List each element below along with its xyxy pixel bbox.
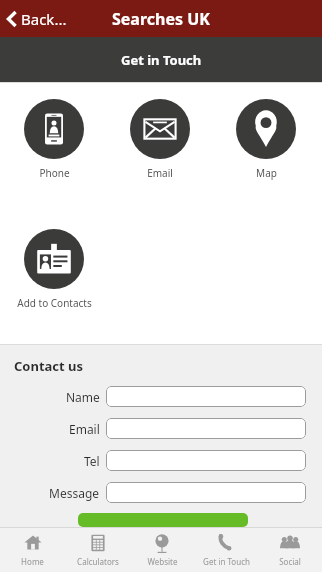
button[interactable]: Website xyxy=(130,527,194,572)
staticText: Home xyxy=(21,556,44,567)
staticText: Website xyxy=(147,556,178,567)
staticText: Tel xyxy=(84,453,100,469)
staticText: Map xyxy=(256,166,277,180)
button[interactable]: Calculators xyxy=(65,527,130,572)
button[interactable]: Map xyxy=(221,99,311,180)
staticText: Contact us xyxy=(14,357,84,375)
button[interactable]: Add to Contacts xyxy=(9,229,99,310)
button[interactable]: Phone xyxy=(9,99,99,180)
button[interactable] xyxy=(106,418,306,439)
button[interactable] xyxy=(106,450,306,471)
button[interactable]: Email xyxy=(115,99,205,180)
staticText: Email xyxy=(69,421,100,437)
staticText: Email xyxy=(147,166,173,180)
button[interactable]: Home xyxy=(0,527,65,572)
button[interactable]: Get in Touch xyxy=(194,527,258,572)
button[interactable] xyxy=(106,386,306,407)
staticText: Social xyxy=(279,556,301,567)
staticText: Back... xyxy=(21,9,67,29)
staticText: Searches UK xyxy=(112,8,210,30)
button[interactable] xyxy=(78,513,248,527)
button[interactable]: Social xyxy=(258,527,322,572)
staticText: Add to Contacts xyxy=(17,296,92,310)
button[interactable]: Back... xyxy=(0,5,75,33)
staticText: Get in Touch xyxy=(203,556,250,567)
staticText: Message xyxy=(49,485,100,501)
staticText: Calculators xyxy=(77,556,119,567)
button[interactable] xyxy=(106,482,306,503)
staticText: Name xyxy=(66,389,100,405)
staticText: Phone xyxy=(39,166,70,180)
staticText: Get in Touch xyxy=(121,51,202,69)
